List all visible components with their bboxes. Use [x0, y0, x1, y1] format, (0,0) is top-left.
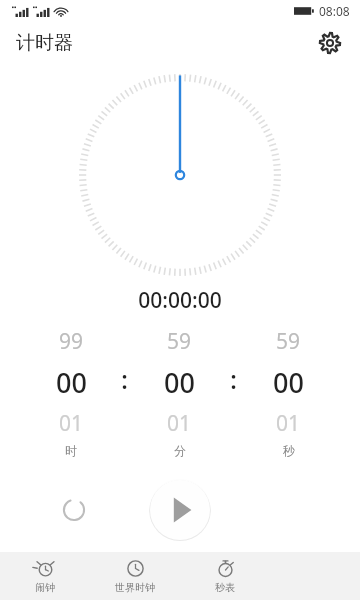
staticText: 59: [167, 327, 192, 356]
button[interactable]: 世界时钟: [90, 552, 180, 600]
button[interactable]: 99: [28, 327, 114, 458]
staticText: 分: [174, 443, 186, 458]
staticText: 08:08: [319, 3, 350, 19]
staticText: 00: [56, 364, 87, 401]
button[interactable]: 59: [136, 327, 223, 458]
button[interactable]: Reset: [52, 488, 96, 532]
staticText: 闹钟: [35, 581, 55, 594]
button[interactable]: 59: [245, 327, 332, 458]
staticText: 世界时钟: [115, 581, 155, 594]
button[interactable]: Start: [149, 479, 211, 541]
staticText: 秒表: [215, 581, 235, 594]
staticText: :: [230, 361, 238, 396]
staticText: 00:00:00: [138, 286, 222, 315]
staticText: 00: [164, 364, 195, 401]
staticText: 01: [167, 409, 192, 438]
staticText: 秒: [283, 443, 295, 458]
button[interactable]: 秒表: [180, 552, 270, 600]
staticText: 99: [59, 327, 84, 356]
button[interactable]: 闹钟: [0, 552, 90, 600]
staticText: 01: [276, 409, 301, 438]
staticText: 计时器: [16, 31, 73, 55]
staticText: 01: [59, 409, 84, 438]
staticText: 59: [276, 327, 301, 356]
staticText: 时: [65, 443, 77, 458]
button[interactable]: Settings: [310, 23, 350, 63]
staticText: :: [121, 361, 129, 396]
staticText: 00: [273, 364, 304, 401]
